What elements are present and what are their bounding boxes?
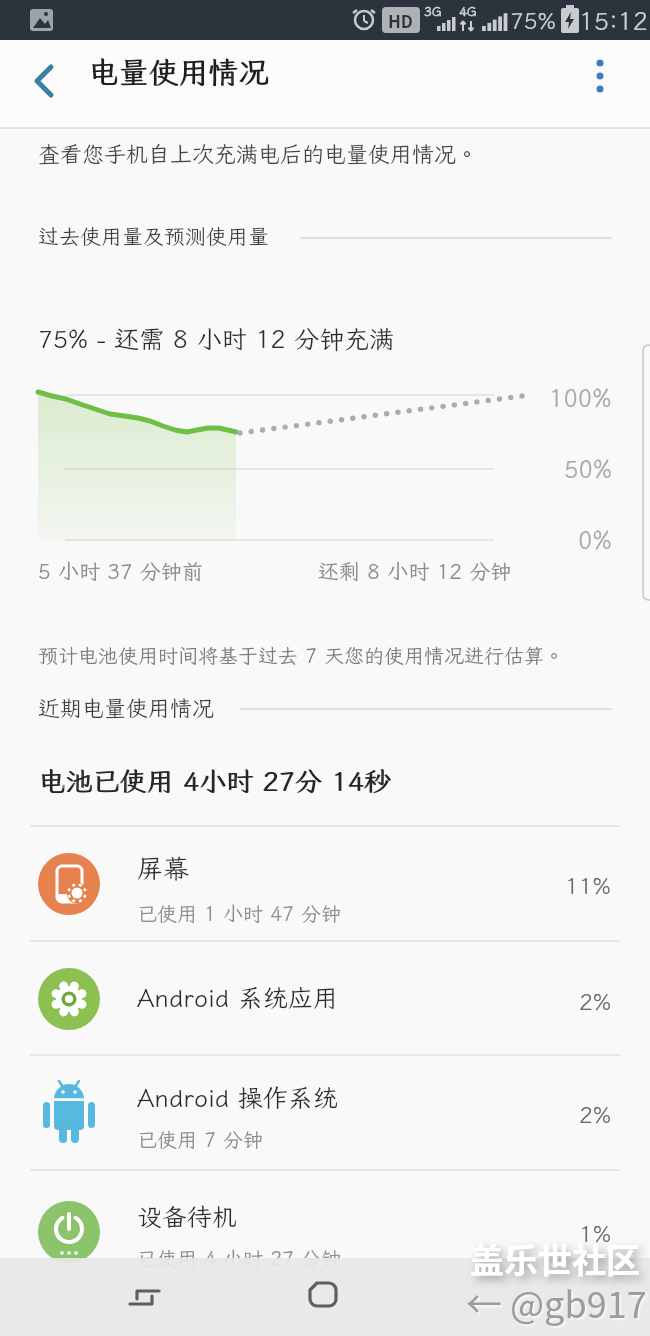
staticText: 已使用 1 小时 47 分钟 [137, 900, 341, 926]
staticText: 75% [510, 5, 557, 35]
staticText: Android 系统应用 [137, 981, 338, 1014]
staticText: 设备待机 [137, 1200, 238, 1233]
staticText: 75% - 还需 8 小时 12 分钟充满 [38, 322, 395, 355]
staticText: 2% [579, 986, 612, 1016]
staticText: 预计电池使用时间将基于过去 7 天您的使用情况进行估算。 [38, 642, 564, 668]
staticText: 4G [459, 3, 477, 20]
button[interactable] [112, 1265, 176, 1329]
staticText: 还剩 8 小时 12 分钟 [318, 557, 512, 585]
staticText: 查看您手机自上次充满电后的电量使用情况。 [38, 139, 479, 168]
staticText: 屏幕 [137, 851, 190, 885]
button[interactable]: 屏幕 [0, 827, 650, 941]
button[interactable]: Android 系统应用 [0, 941, 650, 1055]
staticText: 50% [564, 453, 612, 485]
staticText: 5 小时 37 分钟前 [38, 557, 203, 585]
staticText: ← @gb917 [466, 1276, 647, 1328]
staticText: 15:12 [579, 4, 648, 37]
staticText: 1% [579, 1218, 612, 1248]
staticText: 3G [424, 3, 442, 20]
staticText: Android 操作系统 [137, 1081, 338, 1114]
button[interactable]: 设备待机 [0, 1170, 650, 1284]
staticText: 盖乐世社区 [470, 1234, 640, 1283]
staticText: 0% [578, 524, 612, 556]
staticText: 2% [579, 1099, 612, 1129]
button[interactable] [470, 1265, 534, 1329]
staticText: 已使用 7 分钟 [137, 1126, 263, 1152]
staticText: 11% [565, 870, 612, 900]
staticText: HD [388, 8, 414, 33]
staticText: 过去使用量及预测使用量 [38, 222, 269, 250]
staticText: 电池已使用 4小时 27分 14秒 [39, 763, 392, 799]
staticText: 100% [549, 382, 612, 414]
button[interactable] [576, 52, 624, 100]
staticText: 电量使用情况 [89, 52, 269, 92]
button[interactable] [291, 1265, 355, 1329]
button[interactable]: Android 操作系统 [0, 1055, 650, 1170]
staticText: 已使用 4 小时 27 分钟 [137, 1245, 341, 1271]
staticText: 近期电量使用情况 [38, 693, 215, 722]
staticText: 电池已使用 4小时 27分 14秒 [38, 763, 391, 799]
staticText: 电量使用情况 [88, 52, 268, 92]
button[interactable] [20, 57, 68, 105]
